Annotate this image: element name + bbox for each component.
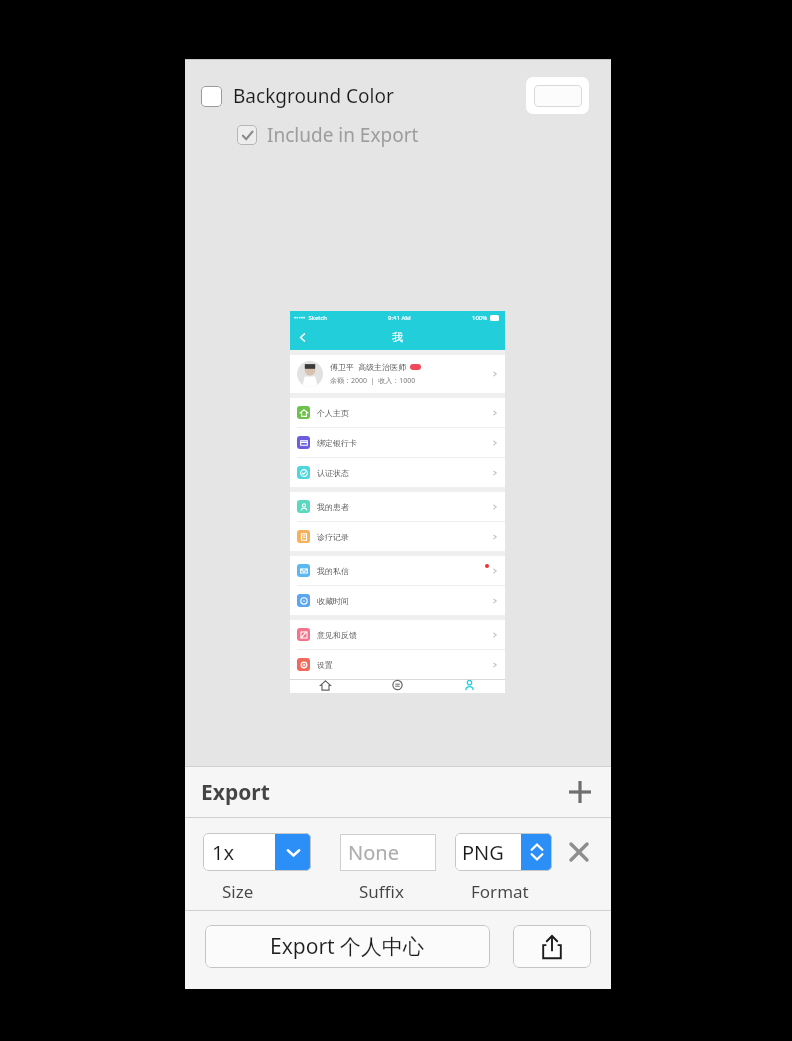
staticText: 个人主页 bbox=[317, 408, 349, 418]
button[interactable]: Background Color bbox=[201, 83, 394, 109]
staticText: 1x bbox=[212, 839, 275, 866]
staticText: 余额：2000 | 收入：1000 bbox=[330, 376, 416, 386]
staticText: 收藏时间 bbox=[317, 596, 349, 606]
button[interactable]: None bbox=[340, 834, 436, 871]
staticText: ••••• Sketch bbox=[294, 314, 328, 322]
staticText: 高级主治医师 bbox=[358, 362, 406, 372]
button[interactable]: 我 bbox=[433, 680, 505, 693]
staticText: Export 个人中心 bbox=[270, 932, 425, 961]
staticText: 设置 bbox=[317, 660, 333, 670]
button[interactable]: Background color swatch bbox=[526, 77, 589, 114]
staticText: 100% bbox=[472, 314, 488, 322]
staticText: 认证状态 bbox=[317, 468, 349, 478]
button[interactable]: Add export preset bbox=[563, 775, 597, 809]
staticText: 我的私信 bbox=[317, 566, 349, 576]
button[interactable]: Back bbox=[294, 329, 310, 345]
button[interactable]: 意见和反馈 bbox=[290, 620, 505, 649]
button[interactable]: 咨询 bbox=[361, 680, 433, 693]
button[interactable]: 我的私信 bbox=[290, 556, 505, 585]
staticText: PNG bbox=[462, 839, 521, 866]
staticText: Include in Export bbox=[267, 122, 419, 148]
button[interactable]: Export 个人中心 bbox=[205, 925, 490, 968]
staticText: Format bbox=[471, 880, 529, 903]
staticText: 诊疗记录 bbox=[317, 532, 349, 542]
staticText: None bbox=[348, 839, 399, 866]
button[interactable]: 认证状态 bbox=[290, 458, 505, 487]
staticText: 9:41 AM bbox=[388, 314, 411, 322]
button[interactable]: 收藏时间 bbox=[290, 586, 505, 615]
staticText: 绑定银行卡 bbox=[317, 438, 357, 448]
button[interactable]: 首页 bbox=[290, 680, 361, 693]
button[interactable]: 我的患者 bbox=[290, 492, 505, 521]
staticText: 意见和反馈 bbox=[317, 630, 357, 640]
staticText: Size bbox=[222, 880, 254, 903]
staticText: 我 bbox=[392, 330, 403, 344]
staticText: 我的患者 bbox=[317, 502, 349, 512]
button[interactable]: 傅卫平 bbox=[290, 355, 505, 393]
staticText: 傅卫平 bbox=[330, 362, 354, 372]
button[interactable]: Include in Export bbox=[237, 122, 419, 148]
button[interactable]: 个人主页 bbox=[290, 398, 505, 427]
button[interactable]: PNG bbox=[455, 833, 552, 871]
button[interactable]: 绑定银行卡 bbox=[290, 428, 505, 457]
staticText: Suffix bbox=[359, 880, 404, 903]
button[interactable]: Remove export preset bbox=[563, 836, 595, 868]
button[interactable]: Share bbox=[513, 925, 591, 968]
staticText: Background Color bbox=[233, 83, 394, 109]
button[interactable]: 设置 bbox=[290, 650, 505, 679]
staticText: Export bbox=[201, 778, 270, 807]
button[interactable]: 诊疗记录 bbox=[290, 522, 505, 551]
button[interactable]: 1x bbox=[203, 833, 311, 871]
